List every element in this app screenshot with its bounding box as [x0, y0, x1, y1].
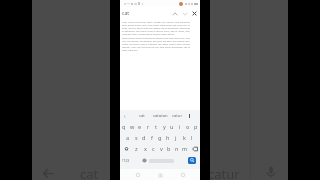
button[interactable]: f: [148, 132, 156, 143]
button[interactable]: y: [160, 121, 168, 132]
button[interactable]: o: [184, 121, 192, 132]
staticText: Setiap pemain memulai permainan dengan e…: [122, 37, 190, 52]
button[interactable]: Backspace: [189, 143, 200, 154]
button[interactable]: k: [180, 132, 188, 143]
button[interactable]: c: [149, 143, 157, 154]
button[interactable]: Next match: [180, 9, 189, 18]
button[interactable]: p: [192, 121, 200, 132]
staticText: b: [167, 145, 171, 152]
staticText: m: [182, 145, 188, 152]
button[interactable]: Back: [133, 170, 143, 180]
button[interactable]: r: [144, 121, 152, 132]
button[interactable]: j: [172, 132, 180, 143]
staticText: y: [163, 123, 166, 130]
button[interactable]: b: [165, 143, 173, 154]
button[interactable]: Recent apps: [178, 170, 188, 180]
button[interactable]: s: [132, 132, 140, 143]
button[interactable]: More options: [184, 110, 194, 121]
staticText: catur: [172, 113, 183, 119]
staticText: a: [126, 134, 130, 141]
staticText: catatan: [153, 113, 168, 119]
staticText: c: [152, 145, 155, 152]
button[interactable]: v: [157, 143, 165, 154]
button[interactable]: e: [136, 121, 144, 132]
button[interactable]: Voice search: [264, 165, 278, 179]
button[interactable]: cat: [134, 110, 149, 121]
button[interactable]: d: [140, 132, 148, 143]
button[interactable]: x: [141, 143, 149, 154]
button[interactable]: q: [120, 121, 128, 132]
button[interactable]: catur: [169, 110, 185, 121]
button[interactable]: z: [132, 143, 141, 154]
button[interactable]: Search: [188, 157, 196, 164]
button[interactable]: Previous match: [170, 9, 179, 18]
staticText: Catur adalah permainan papan strategi du…: [122, 21, 190, 36]
staticText: i: [179, 123, 181, 130]
staticText: s: [135, 134, 138, 141]
button[interactable]: a: [124, 132, 132, 143]
button[interactable]: catatan: [151, 110, 169, 121]
staticText: x: [144, 145, 147, 152]
staticText: catur: [208, 165, 240, 180]
button[interactable]: Emoji: [140, 155, 148, 166]
button[interactable]: cat: [80, 165, 99, 180]
button[interactable]: Back: [40, 166, 56, 180]
staticText: r: [147, 123, 150, 130]
button[interactable]: g: [156, 132, 164, 143]
staticText: k: [183, 134, 186, 141]
staticText: cat: [139, 113, 145, 119]
staticText: l: [191, 134, 193, 141]
button[interactable]: m: [181, 143, 189, 154]
staticText: z: [135, 145, 138, 152]
staticText: d: [142, 134, 146, 141]
staticText: q: [122, 123, 126, 130]
button[interactable]: i: [176, 121, 184, 132]
staticText: u: [170, 123, 174, 130]
button[interactable]: Home: [155, 170, 165, 180]
button[interactable]: u: [168, 121, 176, 132]
button[interactable]: n: [173, 143, 181, 154]
staticText: h: [166, 134, 170, 141]
staticText: t: [155, 123, 157, 130]
button[interactable]: Close find bar: [190, 9, 199, 18]
staticText: e: [138, 123, 142, 130]
staticText: g: [158, 134, 162, 141]
staticText: f: [151, 134, 153, 141]
staticText: ?123: [122, 158, 130, 163]
button[interactable]: w: [128, 121, 136, 132]
button[interactable]: ?123: [121, 155, 131, 166]
staticText: n: [175, 145, 179, 152]
staticText: cat: [122, 10, 130, 17]
staticText: w: [130, 123, 135, 130]
button[interactable]: Shift: [120, 143, 132, 154]
staticText: cat: [80, 165, 99, 180]
button[interactable]: catur: [208, 165, 240, 180]
staticText: ‹: [124, 113, 126, 120]
button[interactable]: h: [164, 132, 172, 143]
button[interactable]: t: [152, 121, 160, 132]
staticText: j: [175, 134, 177, 141]
button[interactable]: l: [188, 132, 196, 143]
staticText: p: [194, 123, 198, 130]
staticText: o: [186, 123, 190, 130]
staticText: v: [160, 145, 163, 152]
